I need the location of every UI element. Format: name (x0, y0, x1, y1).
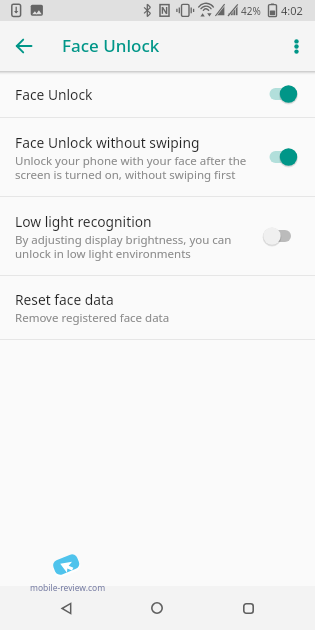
button[interactable]: Switch on (268, 144, 304, 170)
button[interactable]: Low light recognition (0, 197, 315, 275)
button[interactable]: Reset face data (0, 276, 315, 339)
button[interactable]: Face Unlock (0, 71, 315, 117)
button[interactable]: Face Unlock without swiping (0, 118, 315, 196)
staticText: Face Unlock (15, 85, 93, 104)
staticText: Face Unlock without swiping (15, 133, 200, 152)
staticText: By adjusting display brightness, you can… (15, 232, 232, 261)
staticText: Reset face data (15, 290, 114, 309)
staticText: Low light recognition (15, 212, 152, 231)
staticText: Unlock your phone with your face after t… (15, 153, 247, 182)
button[interactable]: Back (44, 586, 88, 630)
button[interactable]: Navigate up (0, 22, 48, 70)
staticText: Remove registered face data (15, 310, 170, 326)
button[interactable]: More options (274, 24, 315, 68)
button[interactable]: Switch on (268, 81, 304, 107)
staticText: Face Unlock (62, 34, 160, 57)
button[interactable]: Switch off (268, 223, 304, 249)
button[interactable]: Recent apps (226, 586, 270, 630)
staticText: 42% (241, 4, 261, 18)
staticText: mobile-review.com (30, 582, 106, 594)
button[interactable]: Home (135, 586, 179, 630)
staticText: 4:02 (281, 3, 303, 18)
